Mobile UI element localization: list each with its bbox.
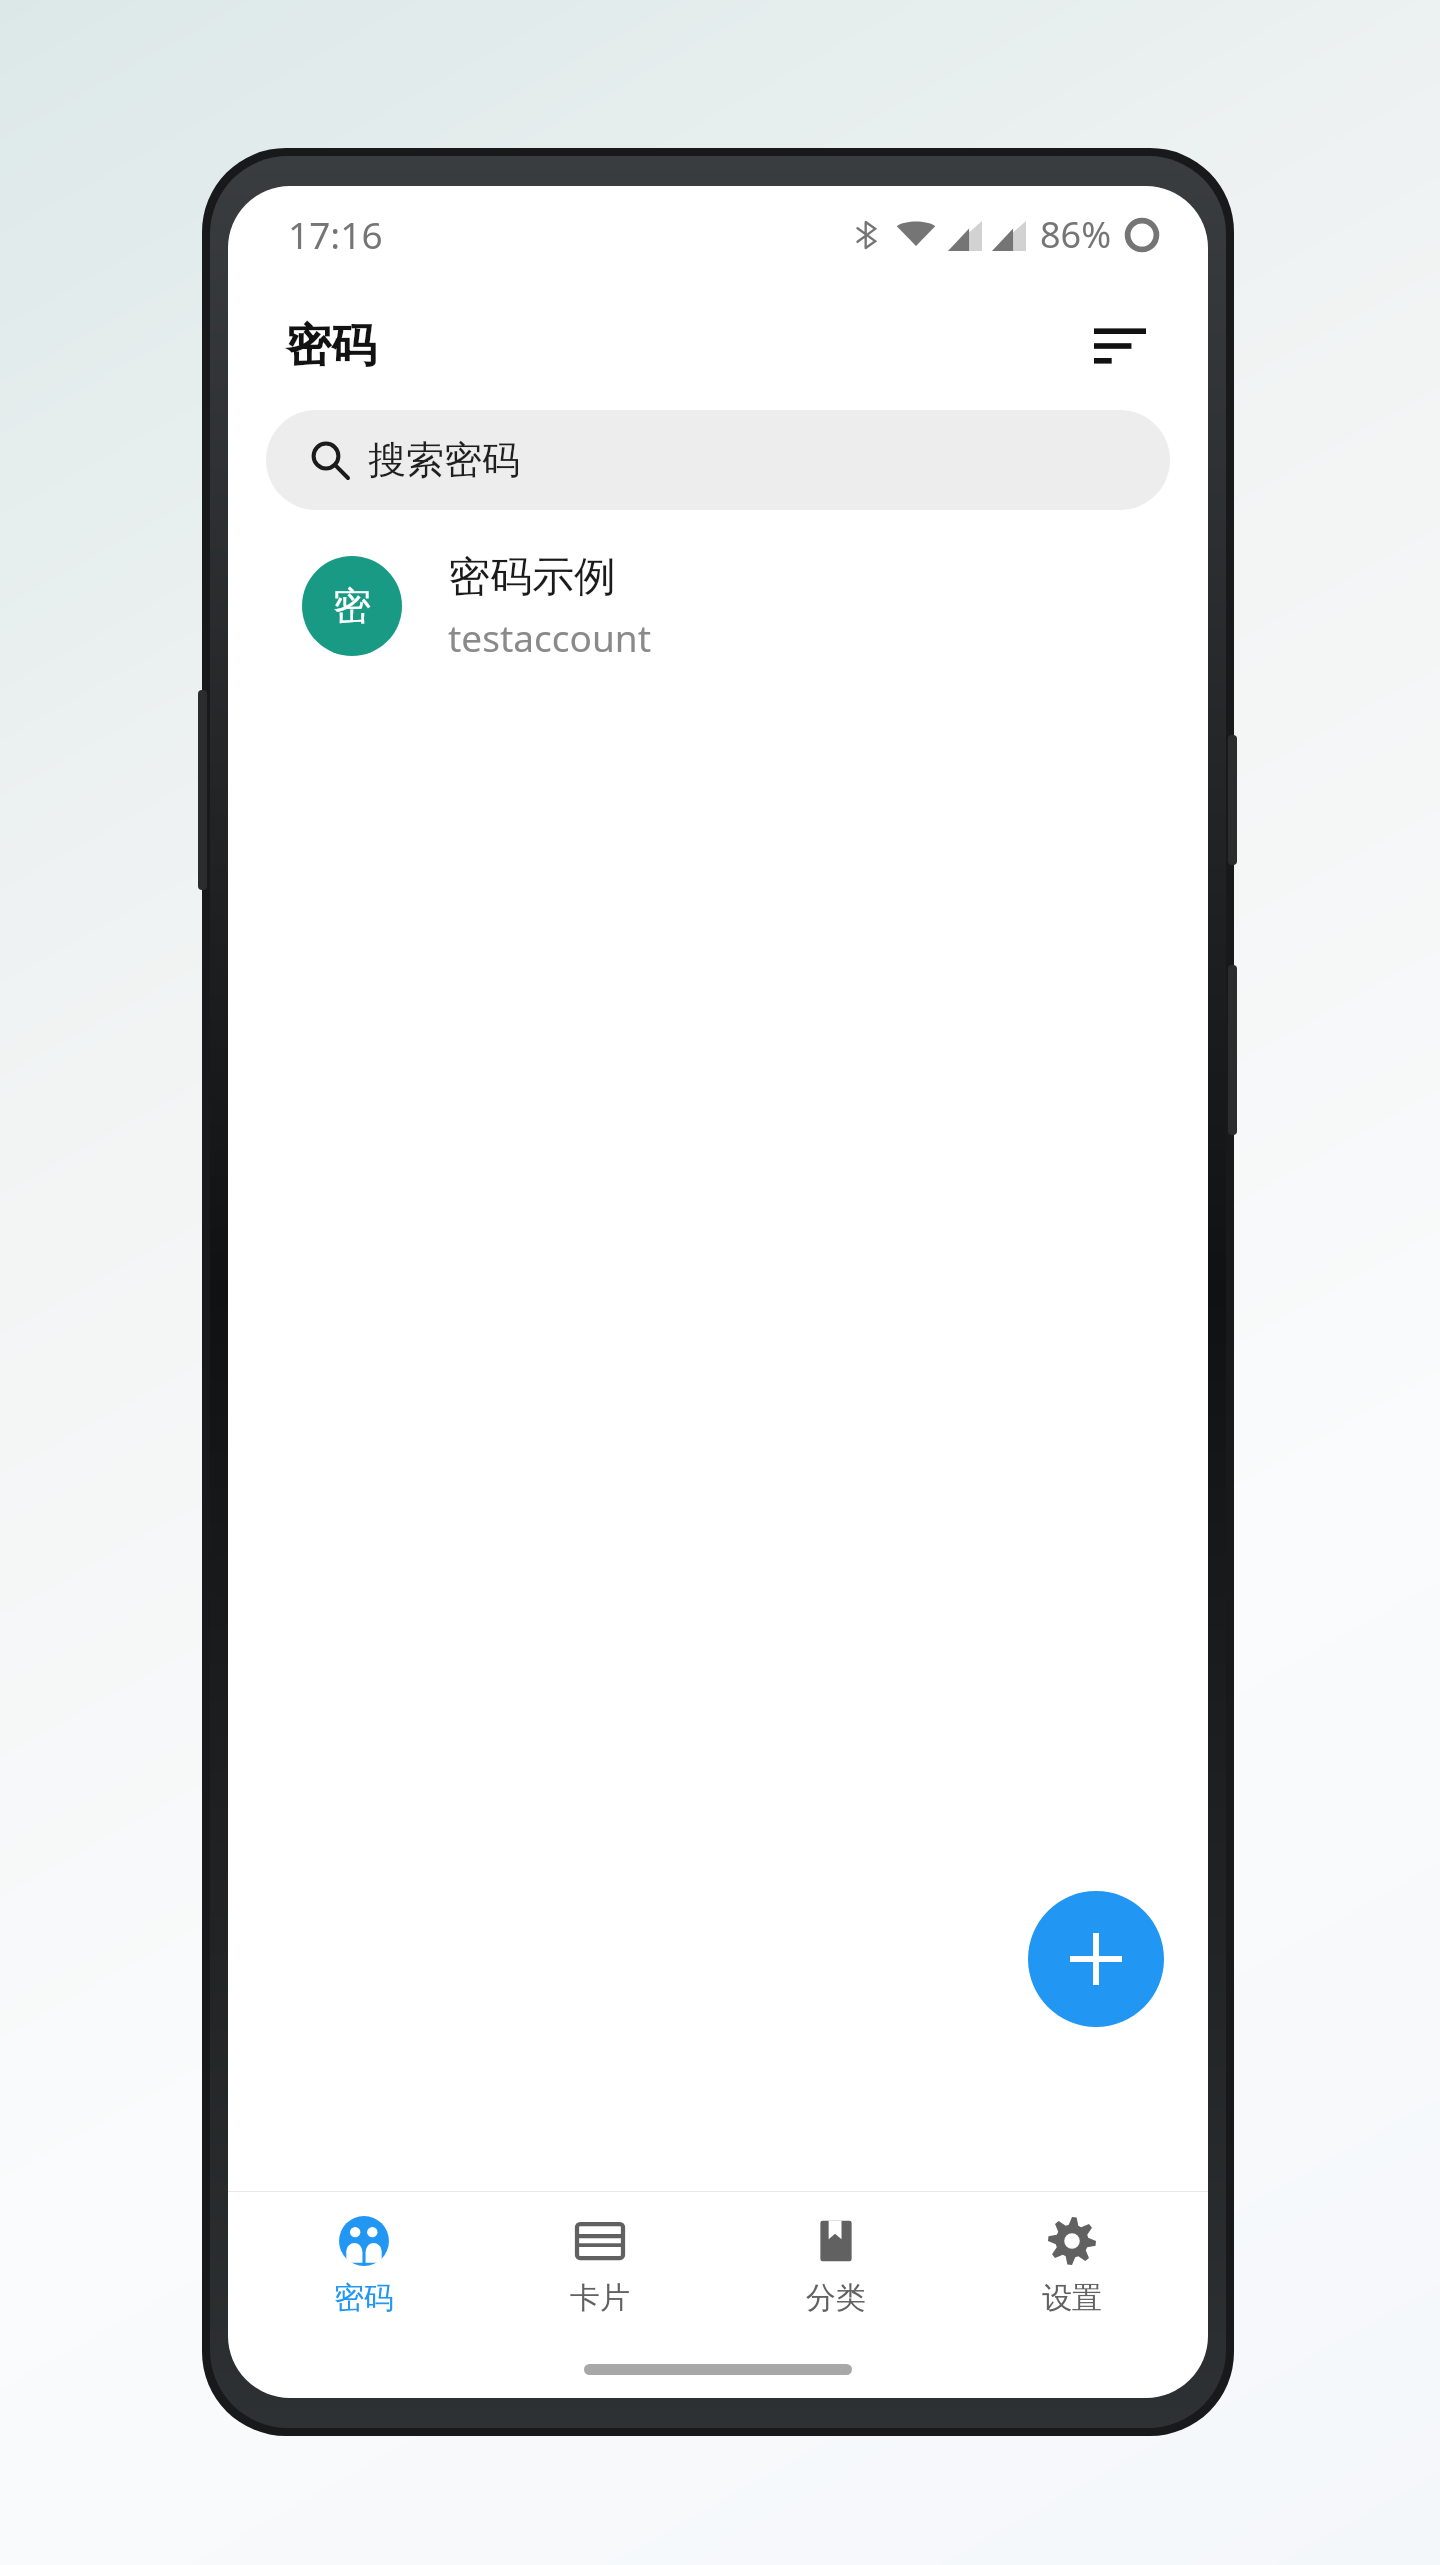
button[interactable]: 卡片: [500, 2192, 700, 2340]
button[interactable]: 设置: [972, 2192, 1172, 2340]
staticText: 卡片: [570, 2279, 630, 2317]
button[interactable]: 分类: [736, 2192, 936, 2340]
button[interactable]: Sort: [1072, 298, 1168, 394]
staticText: 密码: [334, 2279, 394, 2317]
staticText: 搜索密码: [368, 436, 520, 484]
staticText: 86%: [1040, 210, 1112, 259]
staticText: 分类: [806, 2279, 866, 2317]
staticText: 密码示例: [448, 551, 616, 604]
staticText: testaccount: [448, 612, 652, 662]
button[interactable]: 搜索密码: [266, 410, 1170, 510]
button[interactable]: Add: [1028, 1891, 1164, 2027]
button[interactable]: 密: [228, 536, 1208, 676]
staticText: 设置: [1042, 2279, 1102, 2317]
staticText: 密: [333, 582, 371, 630]
staticText: 17:16: [288, 209, 383, 259]
staticText: 密码: [286, 318, 376, 375]
button[interactable]: 密码: [264, 2192, 464, 2340]
